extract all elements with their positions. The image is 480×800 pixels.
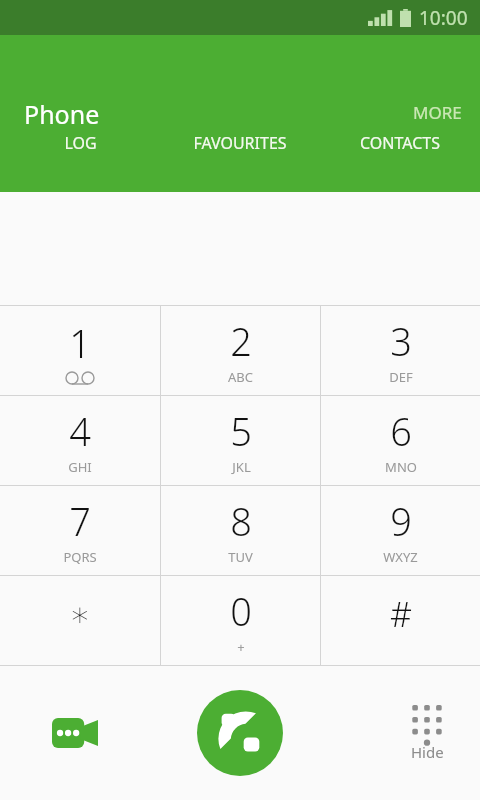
- staticText: 6: [390, 405, 412, 457]
- button[interactable]: LOG: [0, 132, 160, 154]
- staticText: 5: [230, 405, 252, 457]
- staticText: CONTACTS: [360, 132, 440, 154]
- button[interactable]: Video call: [40, 706, 110, 760]
- button[interactable]: Call: [197, 690, 283, 776]
- button[interactable]: 4: [0, 396, 160, 485]
- staticText: DEF: [389, 368, 413, 386]
- staticText: 4: [69, 405, 91, 457]
- button[interactable]: ∗: [0, 576, 160, 665]
- button[interactable]: Hide: [396, 697, 458, 770]
- button[interactable]: 5: [161, 396, 320, 485]
- staticText: ∗: [69, 594, 91, 634]
- staticText: 9: [390, 495, 412, 547]
- staticText: TUV: [228, 548, 253, 566]
- staticText: 1: [69, 317, 91, 369]
- staticText: MNO: [385, 458, 417, 476]
- button[interactable]: 6: [321, 396, 480, 485]
- staticText: 8: [230, 495, 252, 547]
- button[interactable]: 8: [161, 486, 320, 575]
- button[interactable]: FAVOURITES: [160, 132, 320, 154]
- staticText: GHI: [68, 458, 92, 476]
- staticText: 0: [230, 585, 252, 637]
- button[interactable]: 0: [161, 576, 320, 665]
- staticText: PQRS: [63, 548, 97, 566]
- staticText: 3: [390, 315, 412, 367]
- staticText: Hide: [411, 742, 444, 762]
- staticText: 2: [230, 315, 252, 367]
- button[interactable]: CONTACTS: [320, 132, 480, 154]
- staticText: 7: [69, 495, 91, 547]
- staticText: 10:00: [419, 5, 468, 31]
- button[interactable]: 2: [161, 306, 320, 395]
- button[interactable]: MORE: [395, 91, 480, 134]
- button[interactable]: 3: [321, 306, 480, 395]
- staticText: LOG: [64, 132, 97, 154]
- staticText: JKL: [232, 458, 251, 476]
- staticText: MORE: [413, 101, 462, 124]
- staticText: ABC: [228, 368, 253, 386]
- button[interactable]: 7: [0, 486, 160, 575]
- staticText: WXYZ: [383, 548, 418, 566]
- staticText: +: [237, 638, 245, 656]
- button[interactable]: #: [321, 576, 480, 665]
- button[interactable]: 9: [321, 486, 480, 575]
- staticText: FAVOURITES: [193, 132, 287, 154]
- button[interactable]: 1: [0, 306, 160, 395]
- staticText: Phone: [24, 97, 100, 131]
- staticText: #: [390, 591, 412, 637]
